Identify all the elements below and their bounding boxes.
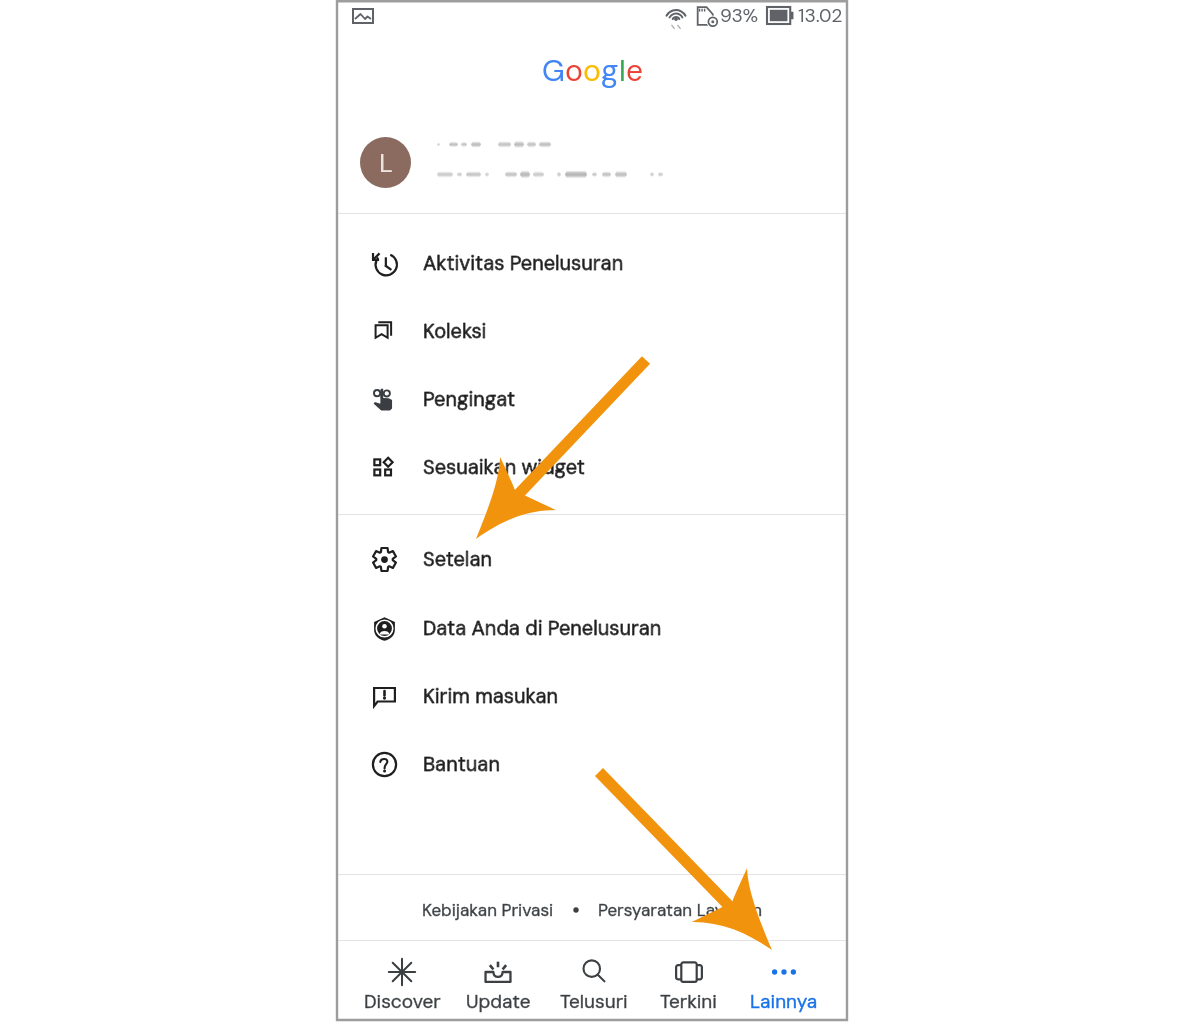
staticText: Pengingat — [423, 386, 516, 412]
staticText: Data Anda di Penelusuran — [423, 615, 662, 641]
staticText: Bantuan — [423, 751, 500, 777]
staticText: g — [601, 51, 619, 90]
button[interactable]: Aktivitas Penelusuran — [336, 229, 848, 297]
staticText: o — [583, 51, 601, 90]
staticText: Koleksi — [423, 318, 487, 344]
staticText: 93% — [720, 3, 759, 28]
staticText: L — [379, 146, 393, 180]
button[interactable]: Sesuaikan widget — [336, 433, 848, 501]
button[interactable]: Koleksi — [336, 297, 848, 365]
button[interactable]: Setelan — [336, 525, 848, 593]
button[interactable]: Terkini — [641, 941, 736, 1020]
button[interactable]: Persyaratan Layanan — [596, 891, 765, 929]
button[interactable]: Pengingat — [336, 365, 848, 433]
button[interactable]: Kirim masukan — [336, 662, 848, 730]
staticText: Sesuaikan widget — [423, 454, 585, 480]
staticText: o — [565, 51, 583, 90]
staticText: Kirim masukan — [423, 683, 559, 709]
staticText: Lainnya — [750, 989, 818, 1014]
button[interactable]: Telusuri — [546, 941, 641, 1020]
button[interactable]: L — [336, 122, 848, 202]
staticText: Persyaratan Layanan — [598, 899, 763, 921]
staticText: Aktivitas Penelusuran — [423, 250, 624, 276]
button[interactable]: Discover — [354, 941, 450, 1020]
staticText: 13.02 — [798, 3, 843, 28]
staticText: Setelan — [423, 546, 492, 572]
button[interactable]: Update — [450, 941, 546, 1020]
staticText: Kebijakan Privasi — [422, 899, 554, 921]
staticText: G — [542, 51, 565, 90]
staticText: Discover — [364, 989, 441, 1014]
button[interactable]: Lainnya — [736, 941, 831, 1020]
staticText: l — [619, 51, 626, 90]
staticText: e — [626, 51, 643, 90]
button[interactable]: Data Anda di Penelusuran — [336, 594, 848, 662]
staticText: Update — [466, 989, 531, 1014]
staticText: Terkini — [660, 989, 717, 1014]
staticText: Telusuri — [560, 989, 628, 1014]
button[interactable]: Kebijakan Privasi — [420, 891, 556, 929]
button[interactable]: Bantuan — [336, 730, 848, 798]
